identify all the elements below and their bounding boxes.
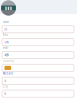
staticText: Name bbox=[3, 20, 10, 24]
button[interactable]: Jo bbox=[2, 26, 74, 33]
staticText: Jo bbox=[4, 27, 7, 31]
button[interactable]: a@b bbox=[2, 51, 74, 59]
button[interactable]: b bbox=[2, 90, 74, 97]
button[interactable]: Country bbox=[2, 64, 74, 71]
staticText: Dev bbox=[4, 40, 8, 44]
staticText: b bbox=[4, 92, 6, 95]
staticText: Website bbox=[3, 72, 14, 75]
staticText: Email bbox=[3, 46, 9, 49]
staticText: a@b bbox=[4, 53, 9, 57]
staticText: Title bbox=[3, 33, 9, 37]
staticText: City bbox=[3, 85, 8, 88]
staticText: Country bbox=[3, 59, 14, 62]
staticText: a bbox=[4, 79, 5, 82]
button[interactable]: Profile photo bbox=[1, 0, 16, 15]
button[interactable]: a bbox=[2, 77, 74, 84]
button[interactable]: Dev bbox=[2, 38, 74, 46]
